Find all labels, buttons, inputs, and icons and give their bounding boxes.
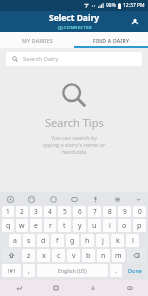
button[interactable]: GIF [68,193,80,205]
button[interactable]: 8 [103,206,116,217]
button[interactable]: r [44,219,56,232]
staticText: k [116,236,120,246]
staticText: h [85,236,90,246]
staticText: Done [128,267,142,274]
staticText: i [109,221,111,231]
staticText: r [49,221,52,231]
button[interactable]: Keyboard settings [4,193,16,205]
button[interactable]: !#1 [2,264,21,277]
button[interactable]: e [30,219,42,232]
button[interactable]: MY DAIRIES [0,32,74,48]
button[interactable]: 0 [133,206,146,217]
button[interactable]: Home [37,280,74,296]
button[interactable]: v [67,249,80,262]
button[interactable]: More options [132,193,144,205]
button[interactable]: b [82,249,95,262]
staticText: 3 [34,207,38,216]
button[interactable]: Shift [2,249,20,262]
staticText: 98% [106,2,116,9]
staticText: w [19,221,25,231]
button[interactable]: Back [0,280,37,296]
button[interactable]: h [81,234,94,247]
staticText: s [27,236,31,246]
staticText: y [78,221,82,231]
staticText: d [41,236,46,246]
button[interactable]: f [51,234,64,247]
button[interactable]: 3 [30,206,42,217]
button[interactable]: p [133,219,146,232]
button[interactable]: t [58,219,71,232]
staticText: 4 [48,207,52,216]
staticText: q [6,221,11,231]
button[interactable]: English (US) [37,264,108,277]
button[interactable]: Emoji [25,193,37,205]
staticText: e [34,221,38,231]
staticText: 7 [93,207,97,216]
button[interactable]: s [23,234,35,247]
staticText: a [13,236,17,246]
button[interactable]: 5 [58,206,71,217]
staticText: b [86,251,91,261]
button[interactable]: w [16,219,28,232]
staticText: CONNECTED [64,25,92,31]
button[interactable]: y [73,219,86,232]
staticText: , [28,266,30,275]
button[interactable]: Backspace [127,249,146,262]
staticText: t [63,221,66,231]
staticText: x [42,251,46,261]
button[interactable]: q [2,219,14,232]
button[interactable]: z [22,249,35,262]
staticText: 6 [78,207,82,216]
button[interactable]: 6 [73,206,86,217]
staticText: l [132,236,134,246]
button[interactable]: a [9,234,21,247]
staticText: g [70,236,75,246]
button[interactable]: Done [124,264,146,277]
staticText: 2 [20,207,24,216]
staticText: . [115,266,117,275]
button[interactable]: k [111,234,124,247]
staticText: Search Tips [45,115,104,130]
staticText: Select Dairy [49,12,100,24]
button[interactable]: i [103,219,116,232]
button[interactable]: Stickers [47,193,59,205]
button[interactable]: Account [128,15,142,29]
button[interactable]: Voice input [89,193,101,205]
button[interactable]: Screenshot [111,280,148,296]
staticText: 8 [108,207,112,216]
button[interactable]: 2 [16,206,28,217]
staticText: o [122,221,127,231]
staticText: 12:37 PM [123,2,145,9]
button[interactable]: l [126,234,139,247]
staticText: c [57,251,61,261]
button[interactable]: g [66,234,79,247]
button[interactable]: 1 [2,206,14,217]
button[interactable]: o [118,219,131,232]
staticText: You can search by typing a dairy's name … [0,134,148,155]
button[interactable]: . [110,264,122,277]
staticText: Search Dairy [23,55,59,63]
button[interactable]: 9 [118,206,131,217]
button[interactable]: , [23,264,35,277]
staticText: 9 [123,207,127,216]
button[interactable]: m [112,249,125,262]
button[interactable]: c [52,249,65,262]
button[interactable]: u [88,219,101,232]
staticText: v [72,251,76,261]
staticText: 0 [138,207,142,216]
staticText: j [102,236,104,246]
button[interactable]: j [96,234,109,247]
button[interactable]: 4 [44,206,56,217]
staticText: n [101,251,106,261]
button[interactable]: x [37,249,50,262]
staticText: English (US) [58,267,87,274]
button[interactable]: n [97,249,110,262]
button[interactable]: Hide keyboard [74,280,111,296]
button[interactable]: d [37,234,49,247]
button[interactable]: FIND A DAIRY [74,32,148,48]
staticText: FIND A DAIRY [93,37,130,44]
button[interactable]: 7 [88,206,101,217]
button[interactable]: Themes [111,193,123,205]
staticText: MY DAIRIES [22,37,53,44]
button[interactable]: Search Dairy [6,52,142,66]
